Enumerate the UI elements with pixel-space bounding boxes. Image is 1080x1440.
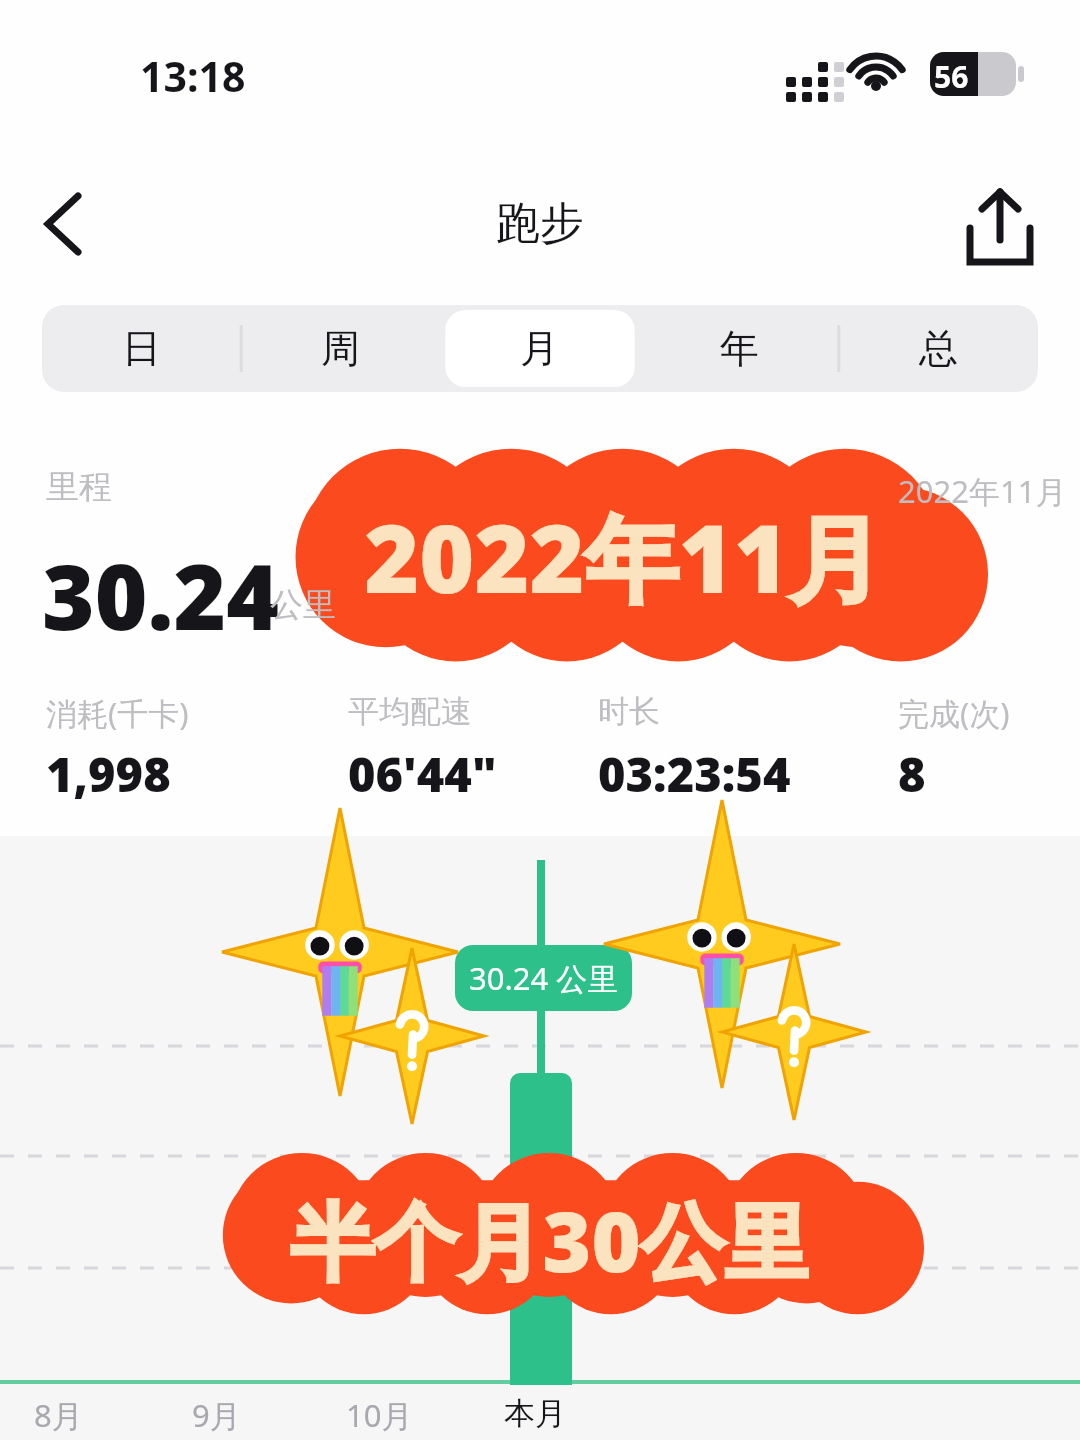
staticText: 8	[898, 742, 926, 806]
staticText: 03:23:54	[598, 742, 791, 806]
staticText: 13:18	[140, 48, 246, 104]
staticText: 2022年11月	[898, 470, 1067, 512]
staticText: 完成(次)	[898, 692, 1010, 734]
button[interactable]: 月	[440, 305, 639, 392]
staticText: 周	[321, 324, 360, 373]
staticText: 本月	[504, 1394, 566, 1433]
staticText: 公里	[270, 584, 336, 626]
staticText: 消耗(千卡)	[46, 692, 189, 734]
button[interactable]: Share	[946, 172, 1054, 276]
button[interactable]: 周	[241, 305, 440, 392]
button[interactable]: 年	[640, 305, 839, 392]
button[interactable]: 日	[42, 305, 241, 392]
staticText: 跑步	[496, 196, 584, 251]
staticText: 30.24 公里	[469, 957, 619, 999]
staticText: 日	[122, 324, 161, 373]
staticText: 月	[520, 324, 559, 373]
staticText: 56	[934, 56, 969, 97]
staticText: 9月	[192, 1394, 241, 1436]
staticText: 2022年11月	[364, 493, 883, 621]
staticText: 时长	[598, 692, 660, 731]
button[interactable]: Back	[18, 172, 128, 276]
staticText: 8月	[34, 1394, 83, 1436]
staticText: 06'44"	[348, 742, 497, 806]
staticText: 年	[720, 324, 759, 373]
staticText: 10月	[346, 1394, 413, 1436]
button[interactable]: 总	[839, 305, 1038, 392]
staticText: 平均配速	[348, 692, 472, 731]
staticText: 30.24	[42, 534, 279, 657]
staticText: 半个月30公里	[290, 1182, 809, 1292]
staticText: 里程	[46, 466, 112, 508]
staticText: 1,998	[46, 742, 171, 806]
staticText: 总	[919, 324, 958, 373]
